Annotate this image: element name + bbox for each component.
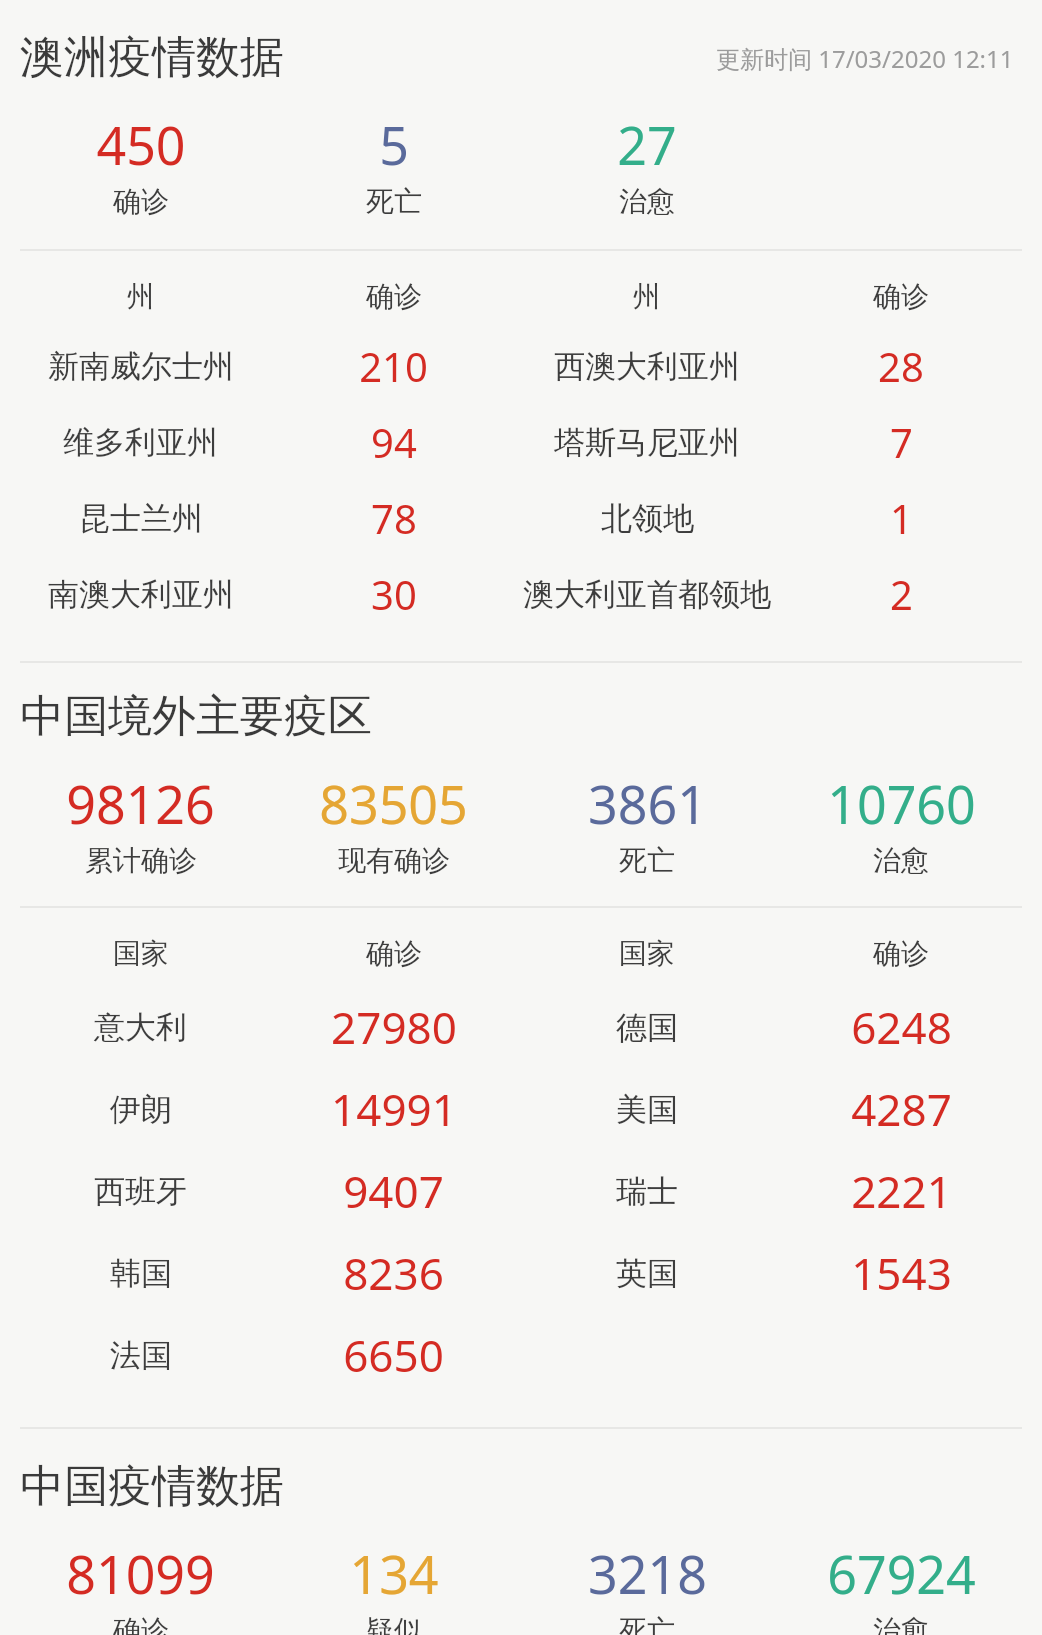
staticText: 134 (349, 1538, 439, 1609)
staticText: 9407 (343, 1161, 444, 1221)
button[interactable]: 134 (267, 1538, 520, 1635)
staticText: 澳大利亚首都领地 (523, 575, 771, 614)
staticText: 韩国 (110, 1254, 172, 1293)
button[interactable]: 27 (520, 109, 774, 219)
staticText: 确诊 (873, 279, 929, 314)
staticText: 现有确诊 (338, 843, 450, 878)
staticText: 中国疫情数据 (20, 1459, 284, 1514)
staticText: 昆士兰州 (79, 499, 203, 538)
staticText: 瑞士 (616, 1172, 678, 1211)
staticText: 州 (633, 279, 661, 314)
staticText: 83505 (319, 768, 468, 839)
button[interactable]: 83505 (267, 768, 520, 878)
staticText: 国家 (113, 936, 169, 971)
staticText: 1543 (851, 1243, 952, 1303)
staticText: 意大利 (94, 1008, 187, 1047)
staticText: 德国 (616, 1008, 678, 1047)
staticText: 10760 (827, 768, 976, 839)
staticText: 累计确诊 (85, 843, 197, 878)
staticText: 疑似 (366, 1613, 422, 1635)
staticText: 78 (371, 491, 417, 545)
staticText: 死亡 (366, 184, 422, 219)
staticText: 伊朗 (110, 1090, 172, 1129)
staticText: 98126 (66, 768, 215, 839)
staticText: 州 (127, 279, 155, 314)
staticText: 7 (890, 415, 913, 469)
staticText: 确诊 (113, 1613, 169, 1635)
staticText: 5 (379, 109, 409, 180)
staticText: 死亡 (619, 843, 675, 878)
button[interactable]: 5 (267, 109, 520, 219)
staticText: 94 (371, 415, 417, 469)
staticText: 治愈 (873, 843, 929, 878)
button[interactable]: 维多利亚州 (14, 415, 1028, 469)
staticText: 西班牙 (94, 1172, 187, 1211)
staticText: 美国 (616, 1090, 678, 1129)
staticText: 确诊 (113, 184, 169, 219)
staticText: 治愈 (873, 1613, 929, 1635)
staticText: 1 (890, 491, 913, 545)
staticText: 新南威尔士州 (48, 347, 234, 386)
staticText: 3218 (588, 1538, 707, 1609)
button[interactable]: 西班牙 (14, 1161, 1028, 1221)
staticText: 2221 (851, 1161, 952, 1221)
staticText: 死亡 (619, 1613, 675, 1635)
staticText: 国家 (619, 936, 675, 971)
staticText: 6248 (851, 997, 952, 1057)
staticText: 确诊 (873, 936, 929, 971)
button[interactable]: 新南威尔士州 (14, 339, 1028, 393)
staticText: 81099 (66, 1538, 215, 1609)
staticText: 南澳大利亚州 (48, 575, 234, 614)
staticText: 67924 (827, 1538, 976, 1609)
staticText: 210 (359, 339, 428, 393)
staticText: 14991 (331, 1079, 457, 1139)
button[interactable]: 81099 (14, 1538, 267, 1635)
staticText: 确诊 (366, 279, 422, 314)
button[interactable]: 67924 (774, 1538, 1028, 1635)
staticText: 2 (890, 567, 913, 621)
button[interactable]: 昆士兰州 (14, 491, 1028, 545)
staticText: 英国 (616, 1254, 678, 1293)
staticText: 北领地 (601, 499, 694, 538)
button[interactable]: 伊朗 (14, 1079, 1028, 1139)
staticText: 6650 (343, 1325, 444, 1385)
button[interactable]: 3218 (520, 1538, 774, 1635)
staticText: 27 (617, 109, 677, 180)
staticText: 4287 (851, 1079, 952, 1139)
staticText: 28 (878, 339, 924, 393)
staticText: 塔斯马尼亚州 (554, 423, 740, 462)
button[interactable]: 意大利 (14, 997, 1028, 1057)
staticText: 450 (96, 109, 186, 180)
button[interactable]: 南澳大利亚州 (14, 567, 1028, 621)
staticText: 维多利亚州 (63, 423, 218, 462)
staticText: 更新时间 17/03/2020 12:11 (716, 42, 1014, 75)
staticText: 27980 (331, 997, 457, 1057)
button[interactable]: 450 (14, 109, 267, 219)
staticText: 30 (371, 567, 417, 621)
button[interactable]: 韩国 (14, 1243, 1028, 1303)
staticText: 澳洲疫情数据 (20, 30, 284, 85)
staticText: 确诊 (366, 936, 422, 971)
button[interactable]: 法国 (14, 1325, 1028, 1385)
button[interactable]: 3861 (520, 768, 774, 878)
staticText: 8236 (343, 1243, 444, 1303)
staticText: 西澳大利亚州 (554, 347, 740, 386)
button[interactable]: 98126 (14, 768, 267, 878)
staticText: 治愈 (619, 184, 675, 219)
button[interactable]: 10760 (774, 768, 1028, 878)
staticText: 中国境外主要疫区 (20, 689, 372, 744)
staticText: 法国 (110, 1336, 172, 1375)
staticText: 3861 (588, 768, 707, 839)
